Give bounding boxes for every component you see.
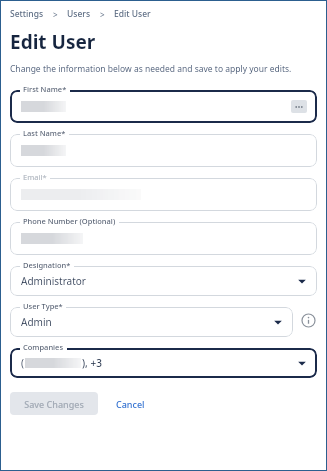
staticText: Edit User — [10, 29, 96, 55]
button[interactable]: Edit User — [114, 8, 151, 20]
staticText: Companies — [23, 342, 64, 352]
staticText: ( — [21, 356, 24, 370]
staticText: Admin — [21, 315, 52, 329]
staticText: Administrator — [21, 274, 86, 288]
button[interactable]: Settings — [10, 8, 44, 20]
staticText: > — [100, 9, 105, 20]
staticText: First Name* — [23, 84, 67, 94]
button[interactable]: More options — [291, 100, 307, 113]
staticText: > — [53, 9, 58, 20]
button[interactable]: More options — [10, 90, 317, 123]
staticText: User Type* — [23, 301, 63, 311]
button[interactable]: Save Changes — [10, 392, 98, 415]
staticText: Email* — [23, 172, 47, 182]
button[interactable]: Administrator — [10, 266, 317, 296]
staticText: Edit User — [114, 8, 151, 20]
staticText: Designation* — [23, 260, 71, 270]
button[interactable]: More information — [299, 311, 317, 329]
staticText: Save Changes — [24, 398, 84, 410]
staticText: Change the information below as needed a… — [10, 63, 292, 75]
other: More information — [301, 313, 316, 328]
button[interactable]: Users — [67, 8, 91, 20]
button[interactable]: Cancel — [112, 392, 149, 415]
staticText: Last Name* — [23, 128, 66, 138]
button[interactable]: Admin — [10, 307, 293, 337]
staticText: ), +3 — [82, 356, 102, 370]
button[interactable] — [10, 134, 317, 167]
staticText: Users — [67, 8, 91, 20]
button[interactable]: ( — [10, 348, 317, 378]
staticText: Settings — [10, 8, 44, 20]
staticText: Phone Number (Optional) — [23, 216, 116, 226]
staticText: Cancel — [116, 398, 145, 410]
button[interactable] — [10, 222, 317, 255]
button[interactable] — [10, 178, 317, 211]
